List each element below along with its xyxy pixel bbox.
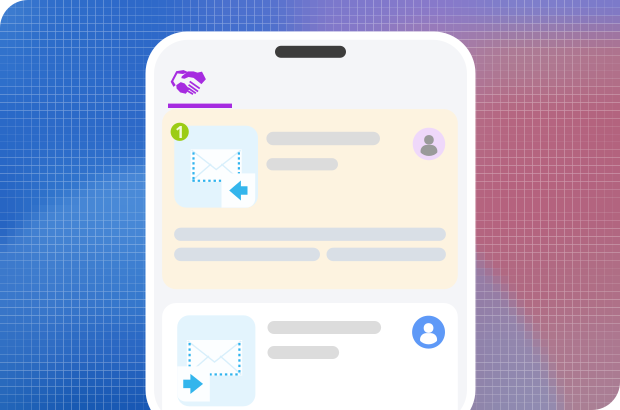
button[interactable]: [162, 303, 458, 410]
button[interactable]: 1: [162, 109, 458, 289]
button[interactable]: Home: [162, 62, 214, 102]
staticText: 1: [175, 121, 184, 142]
